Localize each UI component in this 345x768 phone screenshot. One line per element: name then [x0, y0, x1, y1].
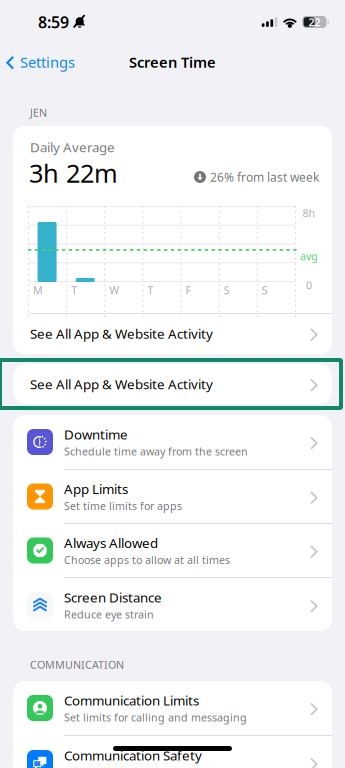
staticText: COMMUNICATION: [30, 657, 124, 672]
staticText: T: [71, 283, 77, 297]
staticText: 8h: [302, 206, 315, 220]
staticText: 26% from last week: [210, 169, 319, 185]
staticText: Choose apps to allow at all times: [64, 553, 230, 567]
button[interactable]: Screen Distance: [13, 578, 332, 632]
staticText: Reduce eye strain: [64, 607, 154, 621]
button[interactable]: Downtime: [13, 415, 332, 469]
button[interactable]: App Limits: [13, 470, 332, 523]
staticText: 8:59: [38, 11, 69, 33]
button[interactable]: Always Allowed: [13, 524, 332, 577]
staticText: Screen Distance: [64, 589, 162, 606]
staticText: avg: [300, 249, 318, 263]
button[interactable]: See All App & Website Activity: [13, 364, 332, 404]
staticText: W: [109, 283, 119, 297]
staticText: App Limits: [64, 480, 128, 498]
staticText: JEN: [30, 105, 47, 120]
staticText: 0: [306, 278, 312, 292]
staticText: Always Allowed: [64, 534, 158, 552]
staticText: Settings: [20, 52, 75, 72]
staticText: Communication Safety: [64, 747, 202, 764]
staticText: 3h 22m: [29, 156, 118, 190]
staticText: 22: [308, 15, 320, 29]
staticText: See All App & Website Activity: [30, 325, 213, 342]
staticText: Downtime: [64, 426, 128, 443]
staticText: F: [186, 283, 192, 297]
staticText: S: [262, 283, 268, 297]
staticText: M: [33, 283, 43, 297]
staticText: Screen Time: [129, 52, 216, 72]
button[interactable]: See All App & Website Activity: [13, 314, 332, 353]
staticText: Schedule time away from the screen: [64, 444, 248, 458]
button[interactable]: Communication Limits: [13, 681, 332, 735]
staticText: S: [224, 283, 230, 297]
staticText: Daily Average: [30, 138, 115, 156]
staticText: Set limits for calling and messaging: [64, 710, 247, 724]
button[interactable]: Communication Safety: [13, 736, 332, 768]
button[interactable]: Settings: [0, 44, 81, 80]
staticText: Communication Limits: [64, 692, 199, 709]
staticText: Set time limits for apps: [64, 499, 182, 513]
staticText: T: [147, 283, 153, 297]
staticText: See All App & Website Activity: [30, 375, 213, 393]
